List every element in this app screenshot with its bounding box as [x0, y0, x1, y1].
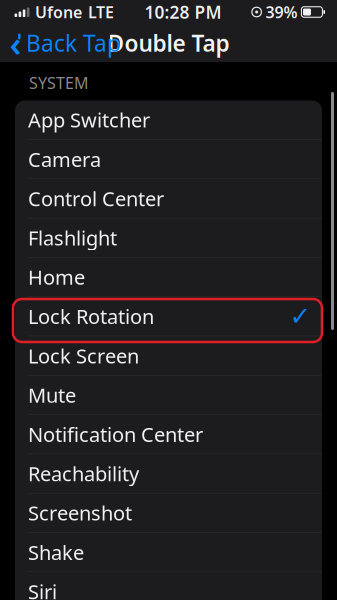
button[interactable]: Camera [15, 140, 322, 179]
button[interactable]: Lock Rotation [15, 297, 322, 336]
button[interactable]: Mute [15, 376, 322, 415]
button[interactable]: Lock Screen [15, 336, 322, 376]
staticText: Reachability [28, 460, 139, 487]
staticText: Back Tap [26, 28, 121, 58]
staticText: Flashlight [28, 224, 117, 251]
button[interactable]: Screenshot [15, 493, 322, 533]
staticText: 10:28 PM [144, 0, 221, 23]
staticText: ‹ [9, 20, 21, 66]
staticText: Notification Center [28, 421, 203, 447]
button[interactable]: Shake [15, 533, 322, 572]
staticText: App Switcher [28, 106, 150, 133]
staticText: Lock Rotation [28, 303, 154, 330]
staticText: Shake [28, 539, 84, 565]
staticText: Double Tap [107, 28, 229, 58]
button[interactable]: Notification Center [15, 415, 322, 454]
staticText: Lock Screen [28, 342, 139, 369]
staticText: Ufone [35, 1, 82, 23]
staticText: Home [28, 264, 85, 290]
staticText: LTE [88, 1, 114, 23]
staticText: 39% [265, 1, 297, 23]
button[interactable]: Control Center [15, 179, 322, 218]
staticText: Siri [28, 578, 57, 600]
button[interactable]: Siri [15, 572, 322, 600]
button[interactable]: Reachability [15, 454, 322, 493]
button[interactable]: ‹ [0, 22, 129, 64]
button[interactable]: App Switcher [15, 100, 322, 140]
button[interactable]: Home [15, 258, 322, 297]
staticText: Control Center [28, 185, 164, 212]
staticText: Mute [28, 382, 76, 408]
button[interactable]: Flashlight [15, 218, 322, 258]
staticText: Camera [28, 146, 101, 172]
staticText: SYSTEM [29, 72, 89, 93]
staticText: ✓ [289, 302, 310, 331]
staticText: Screenshot [28, 499, 132, 526]
